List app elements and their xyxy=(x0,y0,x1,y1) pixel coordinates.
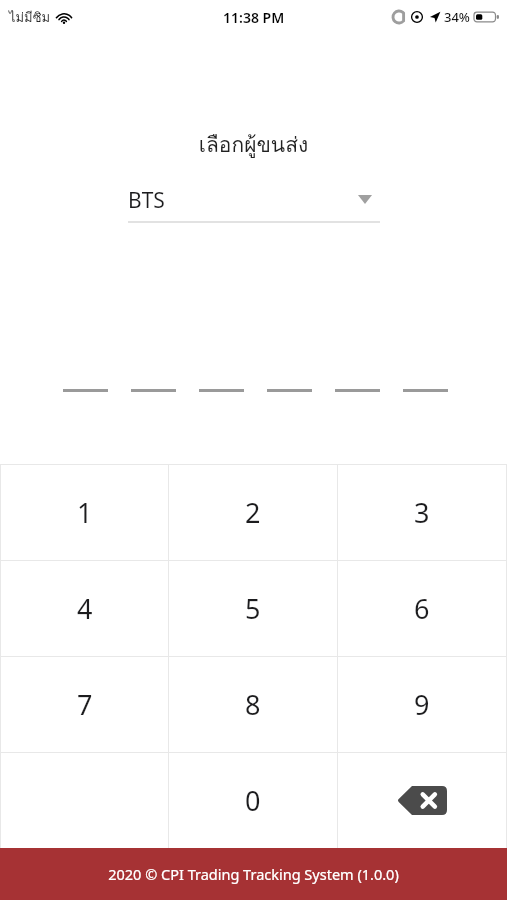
staticText: 1 xyxy=(77,494,93,531)
staticText: 9 xyxy=(414,686,430,723)
staticText: BTS xyxy=(128,186,165,215)
button[interactable]: BTS xyxy=(128,183,380,223)
staticText: ไม่มีซิม xyxy=(9,7,51,28)
staticText: เลือกผู้ขนส่ง xyxy=(0,128,507,161)
staticText: 3 xyxy=(414,494,430,531)
button[interactable]: 6 xyxy=(338,561,506,656)
staticText: 0 xyxy=(245,782,261,819)
staticText: 7 xyxy=(77,686,93,723)
button[interactable]: Backspace xyxy=(338,753,506,848)
button[interactable]: 7 xyxy=(1,657,168,752)
button[interactable]: 9 xyxy=(338,657,506,752)
button[interactable]: 3 xyxy=(338,465,506,560)
button[interactable]: 2 xyxy=(169,465,337,560)
staticText: 5 xyxy=(245,590,261,627)
button[interactable]: 5 xyxy=(169,561,337,656)
staticText: 4 xyxy=(77,590,93,627)
button[interactable]: 8 xyxy=(169,657,337,752)
staticText: 34% xyxy=(444,8,470,26)
staticText: 11:38 PM xyxy=(223,8,285,27)
button[interactable]: 4 xyxy=(1,561,168,656)
button[interactable]: 1 xyxy=(1,465,168,560)
staticText: 6 xyxy=(414,590,430,627)
staticText: 8 xyxy=(245,686,261,723)
staticText: 2020 © CPI Trading Tracking System (1.0.… xyxy=(108,864,399,884)
button[interactable]: 0 xyxy=(169,753,337,848)
staticText: 2 xyxy=(245,494,261,531)
